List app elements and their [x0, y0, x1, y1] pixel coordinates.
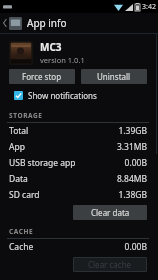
button[interactable]: USB storage app [0, 155, 158, 171]
staticText: Force stop [22, 71, 62, 82]
staticText: Clear cache [88, 259, 132, 270]
staticText: Uninstall [97, 71, 131, 82]
button[interactable]: Total [0, 123, 158, 139]
staticText: Total [9, 125, 29, 137]
staticText: 3.31MB [116, 141, 147, 153]
staticText: 0.00B [124, 157, 147, 169]
staticText: 1.39GB [118, 125, 147, 137]
button[interactable]: Up, App info [0, 13, 158, 33]
button[interactable]: App [0, 139, 158, 155]
button[interactable]: SD card [0, 187, 158, 203]
staticText: App [9, 141, 25, 153]
staticText: Cache [9, 241, 34, 253]
staticText: version 1.0.1 [40, 55, 85, 65]
button[interactable]: Cache [0, 239, 158, 255]
staticText: 8.84MB [116, 173, 147, 185]
staticText: App info [27, 16, 67, 30]
button[interactable]: Clear data [73, 205, 147, 220]
staticText: Clear data [91, 207, 130, 218]
staticText: 3:42 [142, 2, 156, 12]
staticText: STORAGE [9, 111, 43, 120]
staticText: SD card [9, 189, 40, 201]
button[interactable]: Uninstall [81, 69, 147, 84]
staticText: CACHE [9, 227, 34, 236]
button[interactable]: Data [0, 171, 158, 187]
button[interactable]: Force stop [9, 69, 75, 84]
staticText: 1.38GB [118, 189, 147, 201]
button[interactable]: Show notifications [14, 90, 158, 101]
staticText: USB storage app [9, 157, 76, 169]
staticText: MC3 [40, 40, 62, 54]
staticText: Data [9, 173, 28, 185]
staticText: Show notifications [28, 90, 97, 101]
staticText: 0.00B [124, 241, 147, 253]
